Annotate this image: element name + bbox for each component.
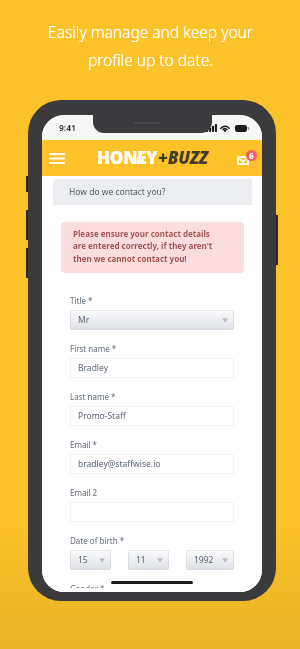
staticText: +BUZZ [158,146,208,169]
staticText: Email * [70,439,98,450]
staticText: Gender * [70,583,105,588]
staticText: Promo-Staff [78,410,126,422]
staticText: 9:41 [59,122,76,134]
staticText: profile up to date. [88,49,213,70]
staticText: First name * [70,343,117,354]
button[interactable]: 15 [70,550,111,570]
button[interactable]: 11 [128,550,169,570]
staticText: 15 [78,554,88,566]
button[interactable]: bradley@staffwise.io [70,454,234,474]
staticText: 1992 [194,554,214,566]
button[interactable]: Messages, 6 unread [236,147,258,169]
button[interactable]: Mr [70,310,234,330]
staticText: 11 [136,554,146,566]
staticText: Email 2 [70,487,98,498]
button[interactable] [70,502,234,522]
staticText: bradley@staffwise.io [78,458,161,470]
staticText: Please ensure your contact details are e… [73,228,213,265]
button[interactable]: Bradley [70,358,234,378]
button[interactable]: Please ensure your contact details are e… [61,222,244,273]
staticText: HONEY [97,146,158,169]
button[interactable]: Open navigation menu [45,146,69,170]
staticText: Title * [70,295,93,306]
staticText: Easily manage and keep your [48,21,253,42]
staticText: Mr [78,314,90,326]
staticText: 6 [249,150,254,161]
button[interactable]: Promo-Staff [70,406,234,426]
staticText: Date of birth * [70,535,125,546]
staticText: Bradley [78,362,109,374]
staticText: Last name * [70,391,116,402]
button[interactable]: 1992 [186,550,234,570]
staticText: How do we contact you? [69,186,166,198]
